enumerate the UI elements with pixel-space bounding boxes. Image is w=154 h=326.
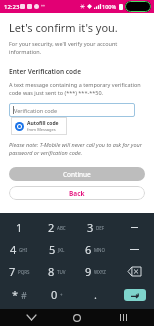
- staticText: 1: [16, 220, 23, 235]
- staticText: 7: [9, 264, 16, 279]
- button[interactable]: Home: [62, 309, 92, 326]
- button[interactable]: space: [115, 238, 154, 260]
- staticText: JKL: [58, 247, 65, 253]
- staticText: 4: [10, 242, 17, 257]
- staticText: #: [21, 289, 27, 301]
- staticText: ABC: [57, 225, 66, 231]
- staticText: 3: [87, 220, 94, 235]
- staticText: DEF: [96, 225, 105, 231]
- staticText: Continue: [63, 170, 91, 179]
- button[interactable]: 5: [38, 238, 76, 260]
- button[interactable]: 8: [38, 260, 76, 283]
- button[interactable]: 1: [0, 216, 38, 238]
- staticText: .: [94, 287, 97, 302]
- button[interactable]: enter: [115, 283, 154, 306]
- staticText: 12:23: [4, 3, 20, 11]
- button[interactable]: Autofill code: [11, 117, 67, 135]
- button[interactable]: 0: [38, 283, 76, 306]
- staticText: Let's confirm it's you.: [9, 20, 118, 35]
- staticText: *: [12, 287, 19, 302]
- button[interactable]: Verification code: [9, 103, 135, 117]
- staticText: Back: [69, 189, 85, 198]
- staticText: 100%: [102, 3, 117, 10]
- staticText: 5: [49, 242, 56, 257]
- staticText: A text message containing a temporary ve…: [9, 81, 145, 97]
- staticText: PQRS: [18, 269, 30, 275]
- staticText: For your security, we'll verify your acc…: [9, 40, 145, 56]
- staticText: 8: [48, 264, 55, 279]
- button[interactable]: 7: [0, 260, 38, 283]
- staticText: GHI: [19, 247, 28, 253]
- staticText: Please note: T-Mobile will never call yo…: [9, 141, 145, 157]
- staticText: 9: [85, 264, 92, 279]
- staticText: Verification code: [14, 107, 58, 114]
- staticText: 6: [85, 242, 92, 257]
- staticText: Autofill code: [27, 120, 59, 127]
- button[interactable]: Back: [16, 309, 46, 326]
- staticText: Enter Verification code: [9, 67, 81, 76]
- button[interactable]: Recents: [108, 309, 138, 326]
- staticText: +: [60, 292, 63, 298]
- staticText: MNO: [94, 247, 106, 253]
- button[interactable]: Continue: [9, 167, 145, 181]
- button[interactable]: 2: [38, 216, 76, 238]
- button[interactable]: 4: [0, 238, 38, 260]
- staticText: 0: [51, 287, 58, 302]
- staticText: ••: [41, 3, 45, 10]
- staticText: WXYZ: [94, 269, 106, 275]
- staticText: 2: [48, 220, 55, 235]
- button[interactable]: dash: [115, 216, 154, 238]
- button[interactable]: del: [115, 260, 154, 283]
- button[interactable]: 6: [76, 238, 115, 260]
- button[interactable]: 3: [76, 216, 115, 238]
- button[interactable]: 9: [76, 260, 115, 283]
- staticText: from Messages: [27, 127, 56, 132]
- button[interactable]: *: [0, 283, 38, 306]
- staticText: TUV: [57, 269, 66, 275]
- button[interactable]: Back: [9, 186, 145, 200]
- button[interactable]: .: [76, 283, 115, 306]
